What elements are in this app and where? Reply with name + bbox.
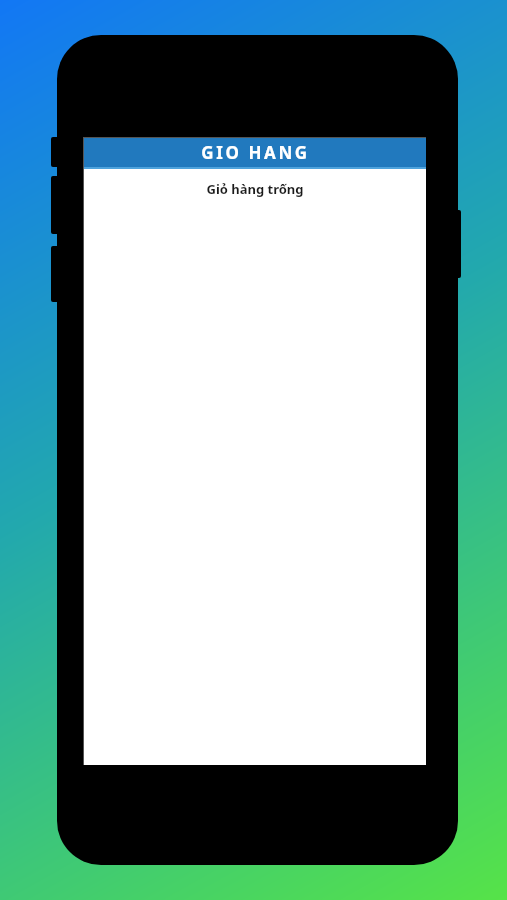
- button[interactable]: GIO HANG: [84, 138, 426, 167]
- staticText: GIO HANG: [201, 141, 310, 164]
- staticText: Giỏ hàng trống: [206, 180, 304, 198]
